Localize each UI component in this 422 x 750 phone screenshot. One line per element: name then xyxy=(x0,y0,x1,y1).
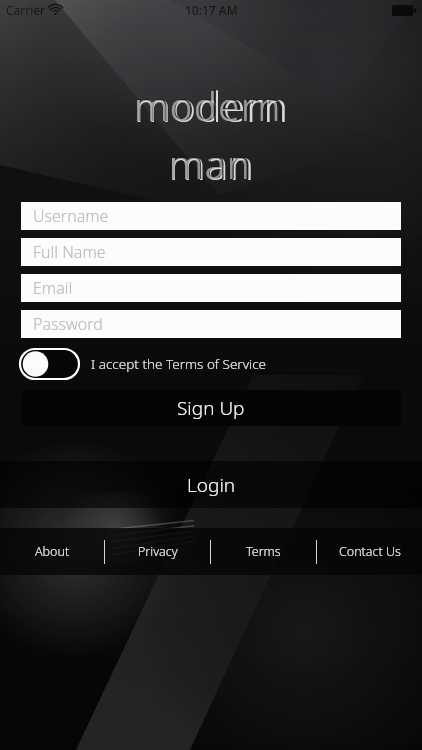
staticText: Contact Us xyxy=(339,543,401,560)
staticText: man xyxy=(169,136,255,192)
button[interactable]: Contact Us xyxy=(317,528,422,575)
staticText: Username xyxy=(33,205,109,227)
staticText: Carrier xyxy=(6,2,46,18)
staticText: man xyxy=(169,138,251,190)
staticText: Login xyxy=(187,472,236,498)
staticText: Password xyxy=(33,313,103,335)
staticText: Full Name xyxy=(33,241,106,263)
staticText: Email xyxy=(33,277,73,299)
staticText: Sign Up xyxy=(177,395,245,421)
staticText: 10:17 AM xyxy=(185,2,238,18)
button[interactable]: Username xyxy=(21,202,401,230)
button[interactable]: Login xyxy=(0,461,422,508)
button[interactable]: About xyxy=(0,528,104,575)
button[interactable]: Terms xyxy=(211,528,316,575)
button[interactable]: Password xyxy=(21,310,401,338)
staticText: About xyxy=(35,543,70,560)
staticText: Privacy xyxy=(138,543,178,560)
button[interactable]: Email xyxy=(21,274,401,302)
staticText: modern xyxy=(134,78,289,134)
staticText: Terms xyxy=(246,543,281,560)
staticText: I accept the Terms of Service xyxy=(91,355,267,373)
button[interactable]: Privacy xyxy=(105,528,210,575)
button[interactable]: Sign Up xyxy=(21,390,401,426)
button[interactable]: Accept Terms of Service toggle xyxy=(20,349,79,379)
staticText: modern xyxy=(134,80,282,132)
button[interactable]: Full Name xyxy=(21,238,401,266)
staticText: modern xyxy=(134,79,286,133)
button[interactable]: Accept Terms of Service toggle xyxy=(20,349,422,379)
staticText: man xyxy=(169,137,253,191)
